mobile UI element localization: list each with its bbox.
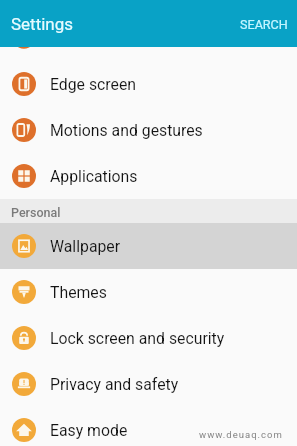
staticText: Edge screen: [50, 75, 137, 94]
staticText: Themes: [50, 283, 107, 302]
button[interactable]: SEARCH: [229, 4, 297, 43]
staticText: Wallpaper: [50, 237, 121, 256]
staticText: www.deuaq.com: [199, 429, 283, 440]
button[interactable]: Motions and gestures: [0, 107, 297, 153]
staticText: Lock screen and security: [50, 329, 225, 348]
button[interactable]: Applications: [0, 153, 297, 199]
button[interactable]: Easy mode: [0, 407, 297, 446]
button[interactable]: Edge screen: [0, 61, 297, 107]
button[interactable]: Themes: [0, 269, 297, 315]
staticText: Easy mode: [50, 421, 128, 440]
staticText: Applications: [50, 167, 138, 186]
button[interactable]: Lock screen and security: [0, 315, 297, 361]
button[interactable]: Wallpaper: [0, 223, 297, 269]
button[interactable]: Privacy and safety: [0, 361, 297, 407]
staticText: SEARCH: [240, 17, 288, 32]
staticText: Settings: [11, 14, 74, 34]
staticText: Privacy and safety: [50, 375, 179, 394]
staticText: Personal: [11, 205, 61, 220]
staticText: Motions and gestures: [50, 121, 203, 140]
